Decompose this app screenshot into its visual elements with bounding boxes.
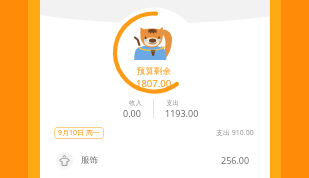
staticText: 1193.00 [165,107,199,119]
staticText: 0.00 [123,107,141,119]
staticText: 9月10日 周一 [58,128,100,138]
staticText: 1807.00 [136,77,172,90]
staticText: 收入 [129,99,142,107]
staticText: 256.00 [221,154,250,166]
staticText: 支出 910.00 [216,128,254,138]
button[interactable]: 9月10日 周一 [54,127,104,139]
staticText: 服饰 [81,155,98,166]
other: Clothing [59,155,70,166]
button[interactable]: Clothing [40,147,270,173]
staticText: 预算剩余 [137,66,171,77]
staticText: 支出 [166,99,179,107]
